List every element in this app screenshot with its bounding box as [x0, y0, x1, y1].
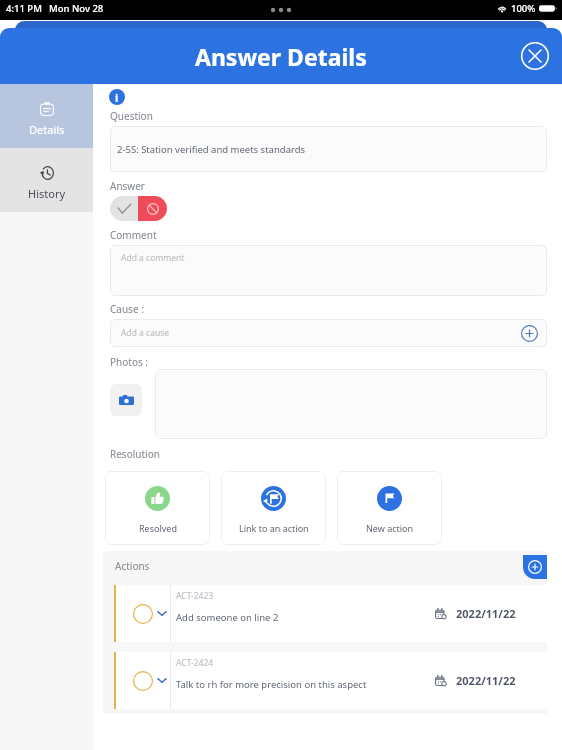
staticText: Resolution — [110, 447, 160, 461]
button[interactable]: ACT-2424 — [114, 652, 547, 709]
button[interactable]: Add a comment — [110, 245, 547, 296]
staticText: 2022/11/22 — [456, 673, 516, 688]
button[interactable]: ACT-2423 — [114, 585, 547, 642]
staticText: ACT-2423 — [176, 590, 214, 602]
staticText: 2-5S: Station verified and meets standar… — [117, 143, 306, 156]
button[interactable]: Non compliant — [138, 196, 167, 221]
button[interactable]: Add action — [523, 555, 547, 579]
staticText: History — [28, 186, 66, 201]
staticText: Answer — [110, 179, 145, 193]
staticText: Cause : — [110, 302, 144, 316]
staticText: Resolved — [139, 522, 177, 534]
button[interactable]: History — [0, 148, 93, 212]
staticText: Answer Details — [195, 41, 367, 72]
staticText: Photos : — [110, 355, 149, 369]
staticText: New action — [366, 522, 414, 534]
staticText: 100% — [511, 2, 536, 15]
button[interactable]: Resolved — [105, 471, 210, 545]
staticText: Details — [29, 122, 65, 137]
staticText: Add a cause — [121, 327, 170, 339]
button[interactable]: Compliant — [110, 196, 138, 221]
staticText: ACT-2424 — [176, 657, 214, 669]
staticText: Comment — [110, 228, 157, 242]
staticText: Add someone on line 2 — [176, 611, 279, 624]
button[interactable]: New action — [337, 471, 442, 545]
staticText: Talk to rh for more precision on this as… — [176, 678, 367, 691]
staticText: Link to an action — [239, 522, 309, 534]
other: Add cause — [521, 325, 538, 342]
button[interactable]: Add a cause — [110, 319, 547, 347]
staticText: Add a comment — [121, 252, 185, 264]
staticText: 2022/11/22 — [456, 606, 516, 621]
button[interactable]: Details — [0, 84, 93, 148]
button[interactable]: Take photo — [110, 384, 142, 416]
button[interactable]: Link to an action — [221, 471, 326, 545]
staticText: Question — [110, 109, 153, 123]
staticText: i — [115, 90, 119, 105]
staticText: Actions — [115, 559, 150, 573]
staticText: 4:11 PM — [6, 2, 42, 15]
staticText: Mon Nov 28 — [49, 2, 104, 15]
button[interactable]: Close — [517, 38, 553, 74]
